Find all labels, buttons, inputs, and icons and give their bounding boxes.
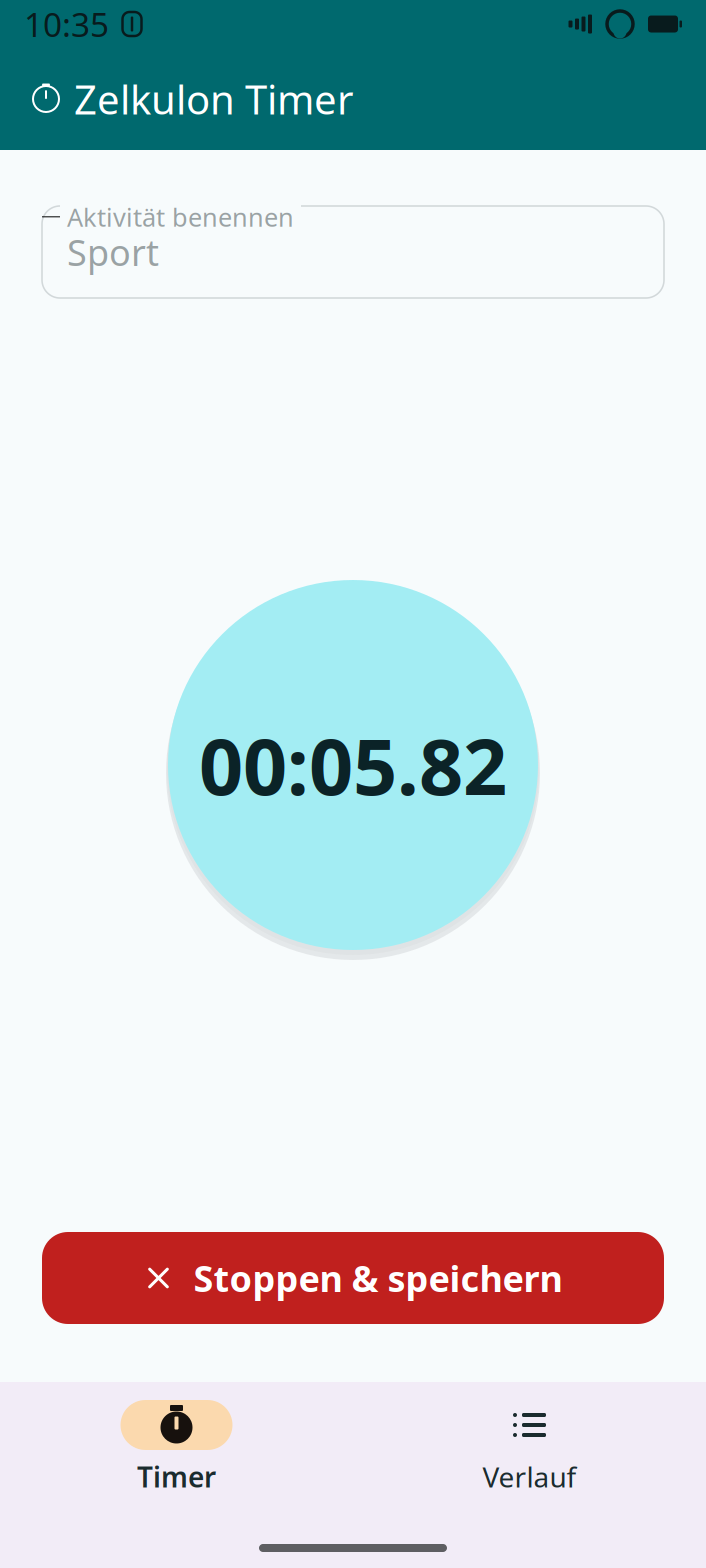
staticText: Sport [67,228,159,276]
staticText: Stoppen & speichern [193,1254,562,1302]
staticText: Timer [137,1458,216,1495]
button[interactable]: Verlauf [353,1400,706,1495]
button[interactable]: Timer [0,1400,353,1495]
button[interactable]: Sport [42,206,664,298]
staticText: Verlauf [482,1458,576,1495]
staticText: Aktivität benennen [67,200,294,234]
staticText: 00:05.82 [199,714,507,816]
button[interactable]: Stoppen & speichern [42,1232,664,1324]
staticText: Zelkulon Timer [74,72,354,125]
staticText: 10:35 [24,2,109,46]
